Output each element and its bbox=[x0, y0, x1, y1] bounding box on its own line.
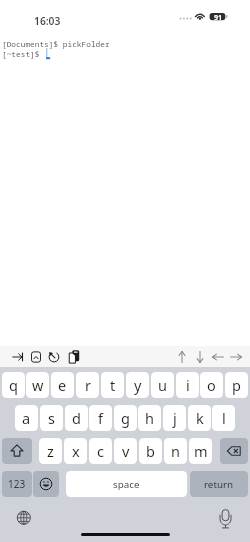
button[interactable]: Shift bbox=[2, 438, 32, 464]
button[interactable]: m bbox=[189, 438, 212, 464]
button[interactable]: Up bbox=[171, 347, 193, 367]
staticText: h bbox=[145, 408, 154, 428]
staticText: 16:03 bbox=[34, 14, 61, 28]
staticText: [Documents]$ pickFolder bbox=[2, 39, 110, 50]
staticText: v bbox=[122, 441, 130, 461]
button[interactable]: space bbox=[66, 471, 187, 497]
button[interactable]: j bbox=[163, 405, 186, 431]
button[interactable]: l bbox=[212, 405, 235, 431]
staticText: r bbox=[85, 375, 91, 395]
button[interactable]: y bbox=[126, 372, 149, 398]
button[interactable]: a bbox=[15, 405, 38, 431]
staticText: p bbox=[232, 375, 241, 395]
button[interactable]: h bbox=[138, 405, 161, 431]
staticText: [~test]$ bbox=[2, 49, 45, 60]
button[interactable]: 123 bbox=[2, 471, 32, 497]
staticText: w bbox=[32, 375, 44, 395]
staticText: q bbox=[9, 375, 18, 395]
staticText: u bbox=[158, 375, 167, 395]
button[interactable]: k bbox=[188, 405, 211, 431]
button[interactable]: Dictation bbox=[217, 507, 234, 529]
button[interactable]: Next keyboard bbox=[13, 507, 35, 529]
staticText: a bbox=[22, 408, 31, 428]
button[interactable]: s bbox=[40, 405, 63, 431]
staticText: z bbox=[47, 441, 54, 461]
staticText: 91 bbox=[210, 12, 226, 22]
button[interactable]: r bbox=[76, 372, 99, 398]
button[interactable]: w bbox=[26, 372, 49, 398]
staticText: k bbox=[196, 408, 204, 428]
staticText: b bbox=[146, 441, 155, 461]
button[interactable]: Down bbox=[189, 347, 211, 367]
button[interactable]: o bbox=[200, 372, 223, 398]
button[interactable]: c bbox=[89, 438, 112, 464]
button[interactable]: n bbox=[164, 438, 187, 464]
staticText: d bbox=[72, 408, 81, 428]
staticText: o bbox=[207, 375, 216, 395]
staticText: s bbox=[48, 408, 55, 428]
button[interactable]: b bbox=[139, 438, 162, 464]
button[interactable]: z bbox=[39, 438, 62, 464]
staticText: n bbox=[171, 441, 180, 461]
button[interactable]: i bbox=[176, 372, 199, 398]
button[interactable]: e bbox=[51, 372, 74, 398]
staticText: g bbox=[121, 408, 130, 428]
staticText: j bbox=[173, 408, 177, 428]
staticText: c bbox=[97, 441, 104, 461]
staticText: m bbox=[194, 441, 208, 461]
button[interactable]: p bbox=[225, 372, 248, 398]
button[interactable]: u bbox=[151, 372, 174, 398]
staticText: 123 bbox=[8, 477, 26, 491]
button[interactable]: History bbox=[47, 347, 61, 367]
button[interactable]: g bbox=[114, 405, 137, 431]
button[interactable]: Tab bbox=[10, 347, 25, 367]
button[interactable]: Control bbox=[29, 347, 43, 367]
staticText: t bbox=[110, 375, 116, 395]
staticText: y bbox=[134, 375, 142, 395]
staticText: i bbox=[186, 375, 190, 395]
button[interactable]: q bbox=[2, 372, 25, 398]
button[interactable]: d bbox=[65, 405, 88, 431]
staticText: l bbox=[222, 408, 226, 428]
button[interactable]: return bbox=[190, 471, 248, 497]
button[interactable]: Left bbox=[207, 347, 229, 367]
button[interactable]: Emoji bbox=[33, 471, 59, 497]
staticText: space bbox=[113, 478, 140, 491]
button[interactable]: x bbox=[64, 438, 87, 464]
staticText: x bbox=[72, 441, 80, 461]
staticText: e bbox=[58, 375, 67, 395]
button[interactable]: f bbox=[89, 405, 112, 431]
button[interactable]: Right bbox=[225, 347, 247, 367]
button[interactable]: Backspace bbox=[220, 438, 248, 464]
button[interactable]: Paste bbox=[67, 347, 81, 367]
staticText: return bbox=[204, 478, 234, 491]
staticText: f bbox=[98, 408, 103, 428]
button[interactable]: v bbox=[114, 438, 137, 464]
button[interactable]: t bbox=[101, 372, 124, 398]
